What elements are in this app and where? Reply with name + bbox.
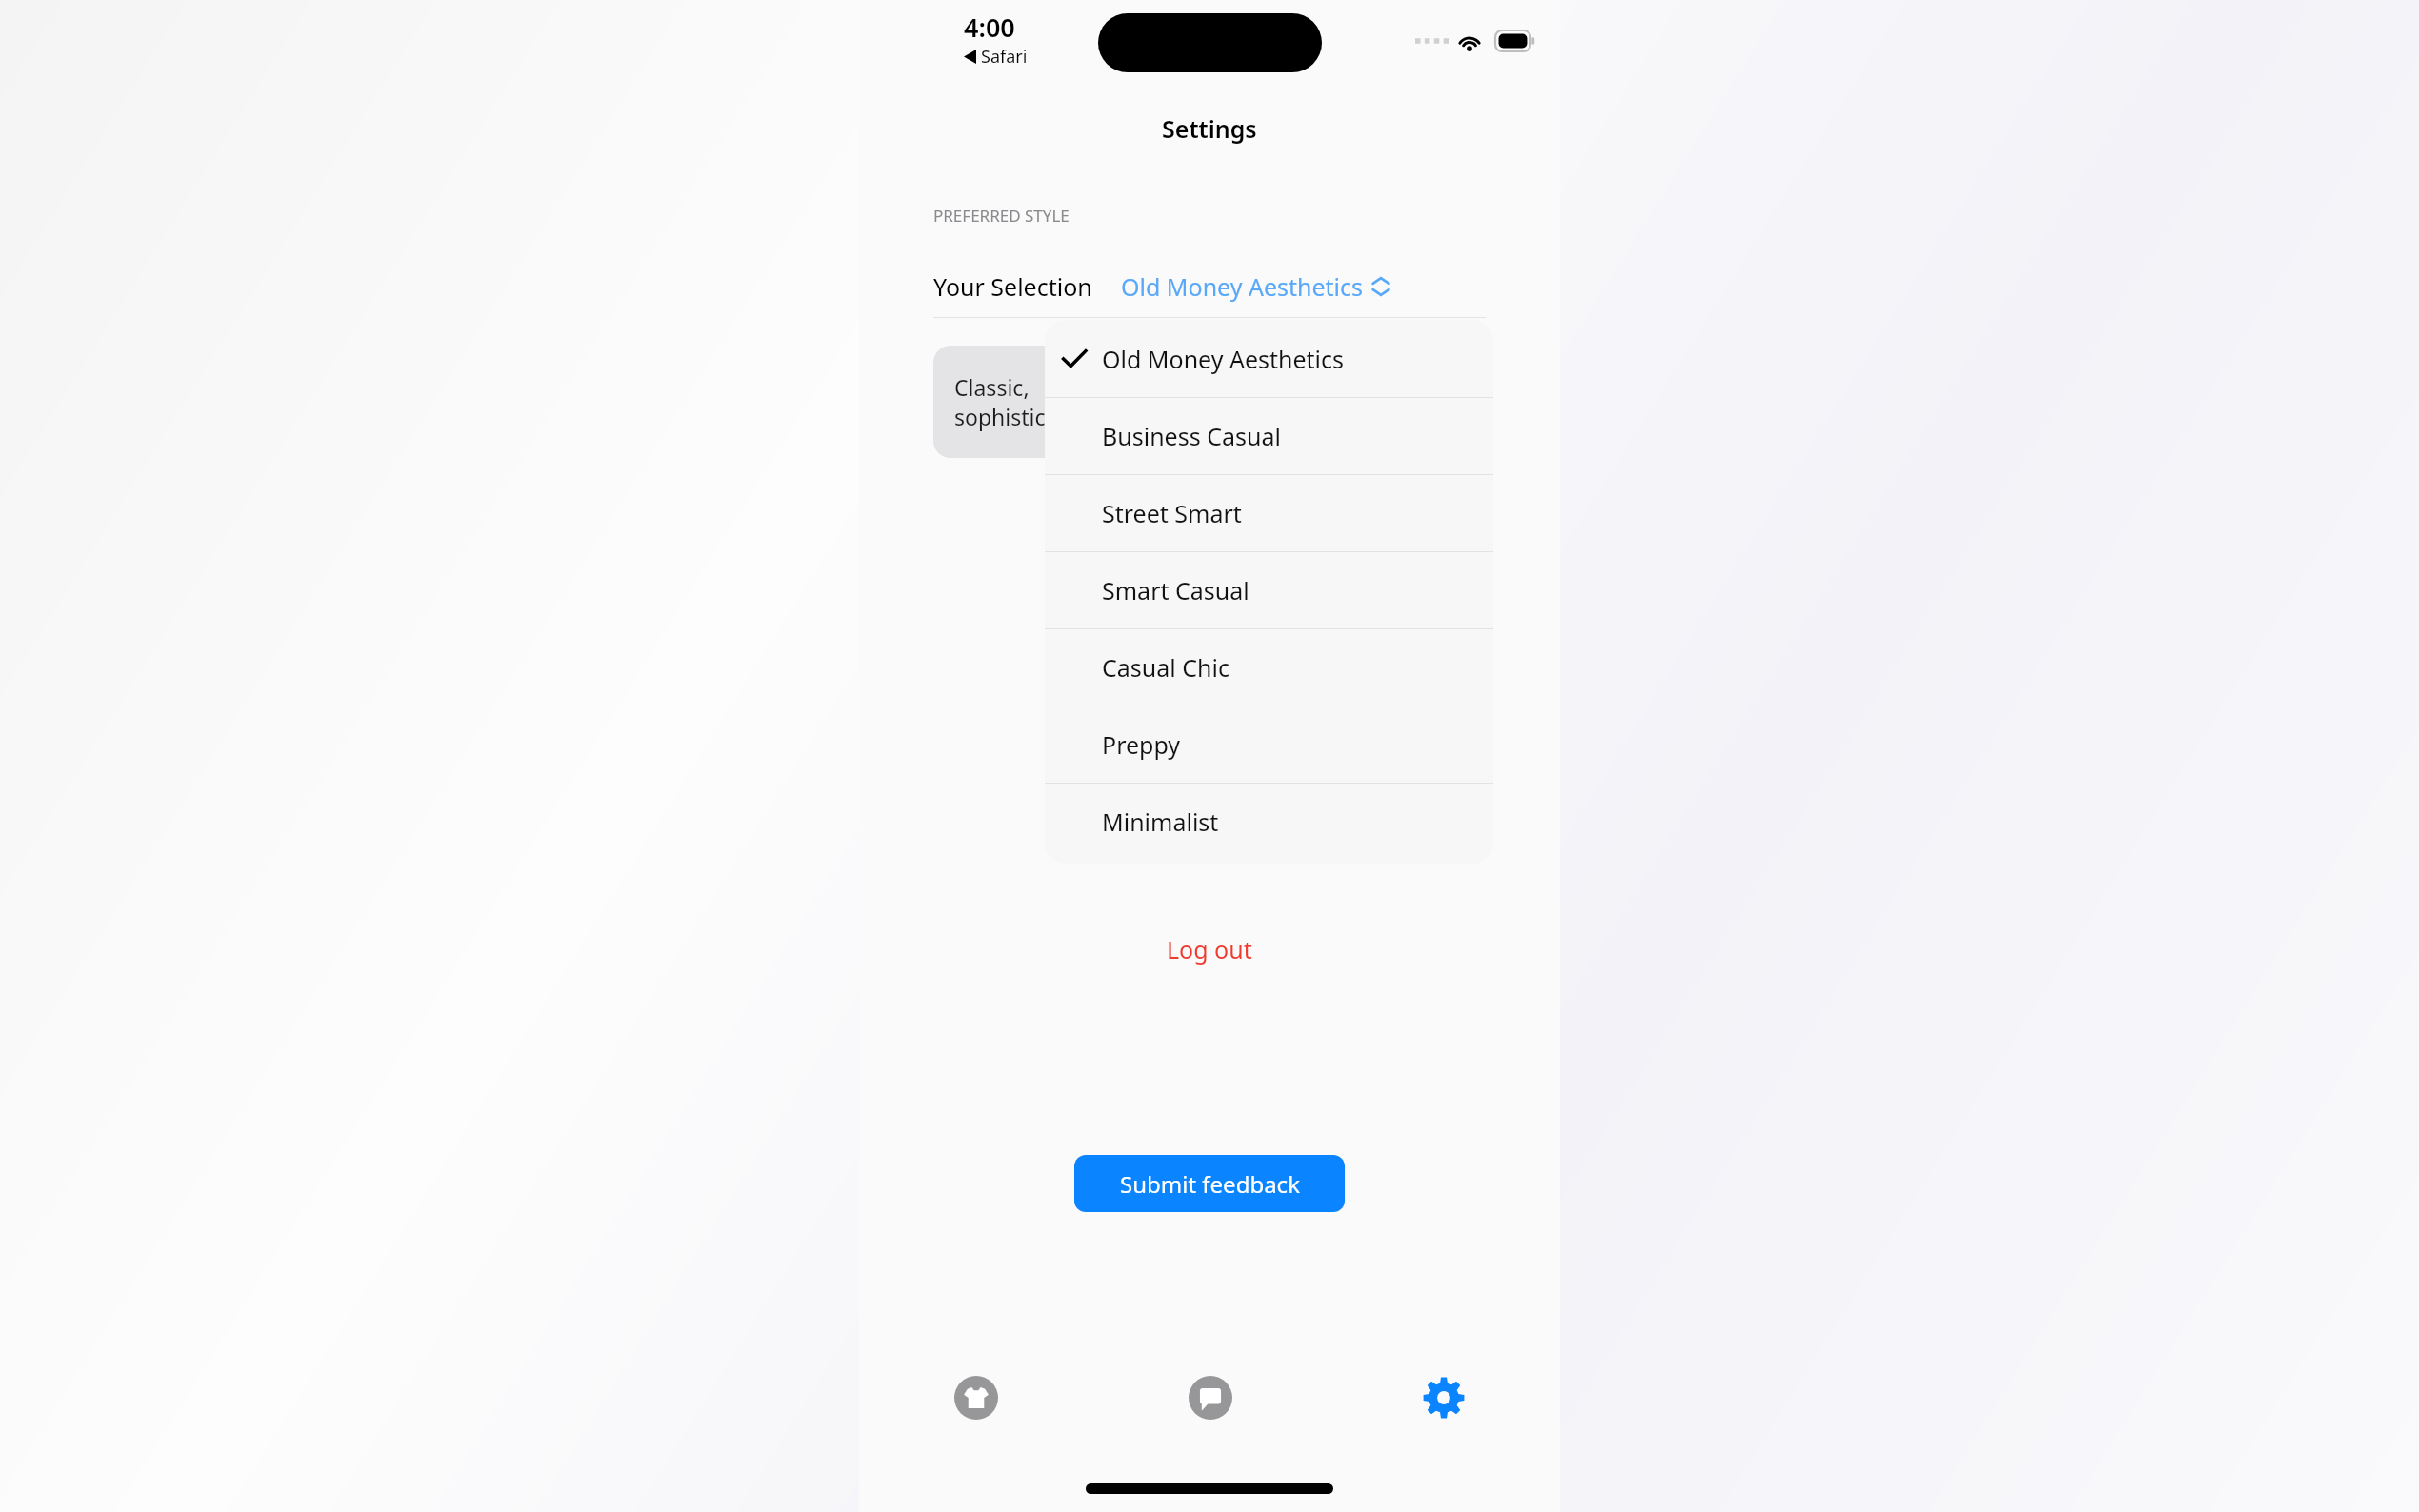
staticText: Submit feedback bbox=[1120, 1168, 1300, 1200]
button[interactable]: Preppy bbox=[1045, 706, 1493, 783]
staticText: 4:00 bbox=[964, 10, 1015, 45]
staticText: Settings bbox=[1162, 112, 1257, 145]
button[interactable]: Your Selection bbox=[933, 257, 1486, 316]
button[interactable]: Chat bbox=[1184, 1371, 1237, 1424]
staticText: Minimalist bbox=[1102, 806, 1219, 838]
staticText: Safari bbox=[981, 45, 1028, 69]
button[interactable]: Log out bbox=[1140, 925, 1279, 973]
button[interactable]: Street Smart bbox=[1045, 474, 1493, 551]
button[interactable]: Wardrobe bbox=[950, 1371, 1003, 1424]
staticText: Classic, sophisticated bbox=[954, 372, 1091, 431]
staticText: Old Money Aesthetics bbox=[1121, 270, 1364, 303]
staticText: PREFERRED STYLE bbox=[933, 205, 1070, 227]
button[interactable]: Business Casual bbox=[1045, 397, 1493, 474]
button[interactable]: Submit feedback bbox=[1074, 1155, 1345, 1212]
button[interactable]: Old Money Aesthetics bbox=[1045, 320, 1493, 397]
button[interactable]: Casual Chic bbox=[1045, 628, 1493, 706]
button[interactable]: Settings bbox=[1417, 1371, 1470, 1424]
staticText: Old Money Aesthetics bbox=[1102, 343, 1345, 375]
staticText: Casual Chic bbox=[1102, 651, 1229, 684]
staticText: Smart Casual bbox=[1102, 574, 1249, 607]
staticText: Your Selection bbox=[933, 270, 1092, 303]
button[interactable]: Minimalist bbox=[1045, 783, 1493, 860]
staticText: Business Casual bbox=[1102, 420, 1281, 452]
staticText: Street Smart bbox=[1102, 497, 1242, 529]
staticText: Log out bbox=[1167, 933, 1252, 965]
button[interactable]: Smart Casual bbox=[1045, 551, 1493, 628]
staticText: Preppy bbox=[1102, 728, 1181, 761]
